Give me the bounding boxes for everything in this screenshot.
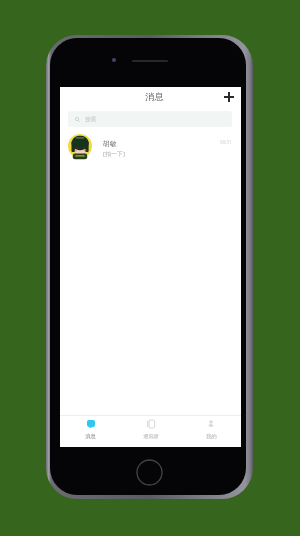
staticText: 消息 — [85, 433, 96, 440]
button[interactable]: 搜索 — [68, 111, 232, 127]
button[interactable]: New chat — [219, 87, 239, 107]
staticText: 我的 — [206, 433, 217, 440]
staticText: 胡敏 — [103, 139, 117, 148]
button[interactable]: 通讯录 — [121, 416, 181, 424]
staticText: 09:31 — [220, 139, 232, 145]
staticText: [拍一下] — [103, 150, 125, 158]
button[interactable]: 消息 — [60, 416, 121, 424]
staticText: 搜索 — [85, 116, 97, 123]
button[interactable]: 胡敏 — [60, 130, 241, 162]
staticText: 通讯录 — [143, 433, 159, 440]
staticText: 消息 — [145, 91, 164, 103]
button[interactable]: 我的 — [181, 416, 241, 424]
